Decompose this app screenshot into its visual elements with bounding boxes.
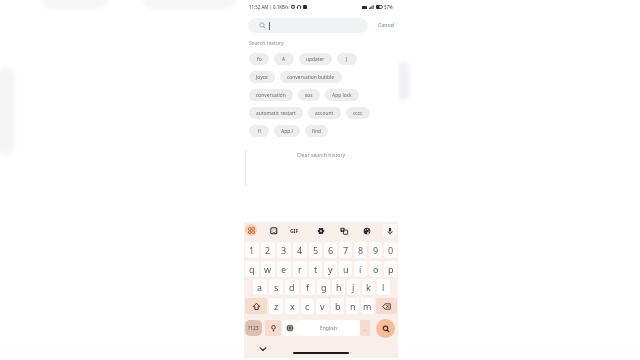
button[interactable]: find: [305, 125, 328, 137]
button[interactable]: k: [362, 279, 375, 295]
button[interactable]: account: [308, 107, 341, 119]
button[interactable]: Translate: [339, 226, 348, 235]
button[interactable]: updater: [299, 53, 332, 65]
button[interactable]: Search: [376, 319, 395, 338]
button[interactable]: 7: [339, 242, 352, 258]
button[interactable]: y: [324, 261, 337, 277]
staticText: 11:52 AM | 0.1KB/s: [249, 4, 289, 10]
button[interactable]: 6: [324, 242, 337, 258]
button[interactable]: Shift: [245, 298, 267, 314]
button[interactable]: 0: [384, 242, 397, 258]
button[interactable]: Joyce: [249, 71, 275, 83]
button[interactable]: p: [384, 261, 397, 277]
staticText: h: [336, 281, 342, 293]
button[interactable]: q: [245, 261, 259, 277]
staticText: v: [320, 300, 325, 312]
button[interactable]: Backspace: [376, 298, 397, 314]
button[interactable]: 8: [354, 242, 367, 258]
button[interactable]: cccc: [346, 107, 370, 119]
button[interactable]: s: [269, 279, 283, 295]
button[interactable]: Change language: [282, 320, 298, 336]
staticText: App l: [281, 128, 293, 135]
button[interactable]: 2: [261, 242, 275, 258]
staticText: sos: [305, 92, 313, 99]
staticText: automatic restart: [256, 110, 296, 117]
button[interactable]: 5: [309, 242, 322, 258]
button[interactable]: r: [293, 261, 307, 277]
button[interactable]: automatic restart: [249, 107, 303, 119]
button[interactable]: conversation bubble: [280, 71, 342, 83]
staticText: c: [305, 300, 310, 312]
button[interactable]: n: [346, 298, 359, 314]
button[interactable]: c: [301, 298, 314, 314]
button[interactable]: Clear search history: [295, 149, 348, 160]
staticText: 2: [265, 244, 271, 256]
button[interactable]: m: [361, 298, 374, 314]
button[interactable]: 3: [277, 242, 291, 258]
button[interactable]: o: [369, 261, 382, 277]
button[interactable]: x: [285, 298, 299, 314]
button[interactable]: conversation: [249, 89, 293, 101]
button[interactable]: fo: [249, 53, 269, 65]
staticText: fo: [257, 56, 262, 63]
button[interactable]: Stickers: [269, 226, 278, 235]
staticText: m: [363, 300, 372, 312]
button[interactable]: b: [331, 298, 344, 314]
button[interactable]: English: [298, 320, 360, 336]
button[interactable]: d: [285, 279, 299, 295]
button[interactable]: 4: [293, 242, 307, 258]
button[interactable]: e: [277, 261, 291, 277]
button[interactable]: .: [360, 320, 370, 336]
button[interactable]: f: [301, 279, 315, 295]
button[interactable]: Keyboard modes: [245, 224, 257, 236]
staticText: j: [352, 281, 355, 293]
button[interactable]: j: [347, 279, 360, 295]
staticText: o: [373, 263, 379, 275]
button[interactable]: g: [317, 279, 330, 295]
button[interactable]: Cancel: [376, 20, 397, 29]
staticText: w: [264, 263, 272, 275]
button[interactable]: v: [316, 298, 329, 314]
staticText: Joyce: [256, 74, 268, 81]
button[interactable]: Emoji: [265, 320, 281, 336]
button[interactable]: ?123: [245, 320, 262, 336]
button[interactable]: App lock: [325, 89, 359, 101]
button[interactable]: t: [309, 261, 322, 277]
staticText: k: [366, 281, 371, 293]
button[interactable]: 1: [245, 242, 259, 258]
button[interactable]: Theme: [362, 226, 371, 235]
staticText: s: [274, 281, 279, 293]
button[interactable]: A: [274, 53, 294, 65]
button[interactable]: w: [261, 261, 275, 277]
staticText: u: [343, 263, 349, 275]
button[interactable]: sos: [298, 89, 320, 101]
button[interactable]: Settings: [316, 226, 325, 235]
button[interactable]: [248, 18, 368, 33]
staticText: 6: [328, 244, 334, 256]
button[interactable]: fi: [249, 125, 269, 137]
button[interactable]: GIF: [290, 226, 299, 235]
staticText: 0: [388, 244, 394, 256]
button[interactable]: l: [377, 279, 390, 295]
staticText: 1: [249, 244, 255, 256]
staticText: t: [314, 263, 318, 275]
button[interactable]: z: [269, 298, 283, 314]
button[interactable]: 9: [369, 242, 382, 258]
button[interactable]: Voice input: [383, 224, 397, 237]
staticText: cccc: [353, 110, 363, 117]
staticText: Cancel: [378, 21, 395, 28]
button[interactable]: a: [253, 279, 267, 295]
staticText: e: [281, 263, 287, 275]
button[interactable]: u: [339, 261, 352, 277]
staticText: fi: [258, 128, 261, 135]
button[interactable]: App l: [274, 125, 300, 137]
button[interactable]: i: [354, 261, 367, 277]
staticText: English: [320, 325, 338, 332]
button[interactable]: Hide keyboard: [257, 343, 268, 354]
button[interactable]: J: [337, 53, 357, 65]
staticText: find: [312, 128, 321, 135]
button[interactable]: h: [332, 279, 345, 295]
staticText: Search history: [249, 39, 284, 46]
staticText: App lock: [332, 92, 352, 99]
staticText: y: [328, 263, 333, 275]
